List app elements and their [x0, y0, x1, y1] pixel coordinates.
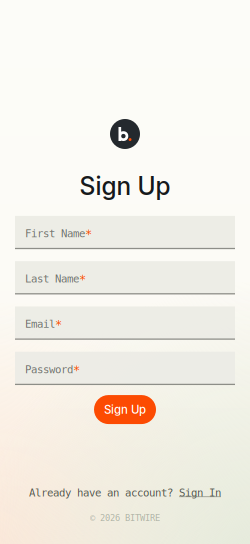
staticText: Sign In [179, 486, 221, 499]
button[interactable]: Email [15, 306, 235, 340]
button[interactable]: Last Name [15, 261, 235, 294]
button[interactable]: First Name [15, 216, 235, 249]
staticText: Last Name [25, 273, 79, 285]
staticText: Sign Up [104, 403, 146, 416]
button[interactable]: Sign Up [94, 395, 156, 424]
staticText: Email [25, 318, 55, 330]
staticText: Already have an account? [29, 486, 179, 499]
staticText: Sign Up [79, 171, 170, 201]
staticText: First Name [25, 227, 85, 240]
staticText: * [55, 318, 62, 332]
staticText: * [73, 363, 80, 377]
staticText: * [85, 227, 92, 241]
staticText: Password [25, 363, 73, 376]
button[interactable]: Password [15, 352, 235, 385]
button[interactable]: Sign In [179, 486, 221, 499]
staticText: © 2026 BITWIRE [90, 513, 160, 523]
staticText: * [79, 273, 86, 287]
